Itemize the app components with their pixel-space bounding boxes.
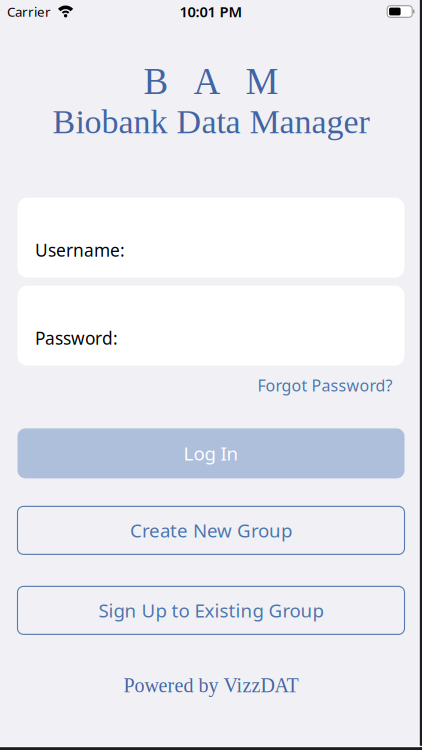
- staticText: Sign Up to Existing Group: [98, 598, 323, 623]
- staticText: B A M: [143, 61, 278, 102]
- staticText: Forgot Password?: [257, 375, 392, 396]
- staticText: Log In: [183, 441, 238, 466]
- staticText: Username:: [35, 239, 125, 262]
- staticText: Password:: [35, 327, 118, 350]
- staticText: Create New Group: [130, 518, 292, 543]
- staticText: Biobank Data Manager: [52, 103, 369, 141]
- staticText: Powered by VizzDAT: [123, 674, 298, 696]
- staticText: 10:01 PM: [179, 2, 242, 21]
- staticText: Carrier: [7, 3, 51, 20]
